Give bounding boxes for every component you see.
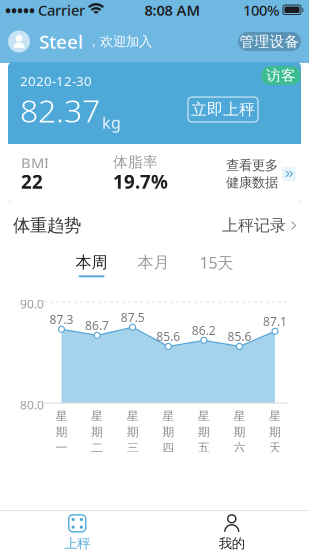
staticText: 六 bbox=[233, 440, 245, 455]
staticText: 本周 bbox=[75, 253, 107, 272]
staticText: 期 bbox=[162, 425, 174, 439]
staticText: 15天 bbox=[199, 252, 233, 273]
staticText: 上秤 bbox=[64, 535, 90, 550]
staticText: 本月 bbox=[137, 253, 169, 272]
staticText: 查看更多 bbox=[226, 157, 278, 173]
staticText: 期 bbox=[91, 425, 103, 439]
staticText: 8:08 AM bbox=[144, 0, 200, 20]
button[interactable]: 本周 bbox=[75, 253, 107, 277]
staticText: 体重趋势 bbox=[13, 215, 81, 236]
staticText: 85.6 bbox=[156, 328, 180, 344]
staticText: ，欢迎加入 bbox=[87, 33, 152, 50]
button[interactable]: 本月 bbox=[137, 253, 169, 277]
staticText: 天 bbox=[269, 440, 281, 455]
staticText: 期 bbox=[55, 425, 67, 439]
staticText: 四 bbox=[162, 440, 174, 455]
staticText: ••••• bbox=[5, 0, 35, 21]
button[interactable]: 我的 bbox=[154, 513, 309, 550]
staticText: 86.7 bbox=[85, 317, 109, 333]
staticText: 22 bbox=[21, 169, 43, 194]
staticText: 19.7% bbox=[113, 169, 168, 194]
staticText: 87.1 bbox=[263, 313, 287, 329]
staticText: 一 bbox=[55, 440, 67, 455]
staticText: 期 bbox=[198, 425, 210, 439]
button[interactable]: 15天 bbox=[199, 252, 233, 278]
staticText: 星 bbox=[162, 409, 174, 424]
staticText: 立即上秤 bbox=[191, 100, 255, 119]
staticText: 90.0 bbox=[20, 296, 44, 312]
staticText: 期 bbox=[233, 425, 245, 439]
staticText: 85.6 bbox=[227, 328, 251, 344]
staticText: 星 bbox=[198, 409, 210, 424]
staticText: 星 bbox=[127, 409, 139, 424]
staticText: 二 bbox=[91, 440, 103, 455]
staticText: 五 bbox=[198, 440, 210, 455]
staticText: BMI bbox=[21, 153, 49, 172]
button[interactable]: 上秤记录 bbox=[222, 216, 296, 235]
staticText: Carrier bbox=[38, 0, 85, 20]
button[interactable]: 管理设备 bbox=[238, 32, 301, 51]
staticText: 100% bbox=[243, 0, 279, 20]
staticText: 星 bbox=[269, 409, 281, 424]
button[interactable]: 访客 bbox=[261, 66, 301, 85]
button[interactable]: 立即上秤 bbox=[188, 97, 258, 122]
staticText: 2020-12-30 bbox=[20, 72, 92, 90]
staticText: 86.2 bbox=[192, 322, 216, 338]
staticText: Steel bbox=[39, 29, 83, 54]
staticText: 管理设备 bbox=[239, 32, 299, 50]
staticText: 80.0 bbox=[20, 397, 44, 413]
staticText: 三 bbox=[127, 440, 139, 455]
staticText: 期 bbox=[269, 425, 281, 439]
staticText: 上秤记录 bbox=[222, 216, 286, 235]
staticText: 82.37 bbox=[20, 89, 100, 131]
staticText: 体脂率 bbox=[113, 153, 158, 171]
staticText: 87.5 bbox=[121, 309, 145, 325]
staticText: kg bbox=[102, 112, 121, 133]
staticText: 期 bbox=[127, 425, 139, 439]
staticText: 星 bbox=[91, 409, 103, 424]
staticText: 星 bbox=[55, 409, 67, 424]
staticText: 星 bbox=[233, 409, 245, 424]
staticText: 访客 bbox=[266, 66, 296, 84]
staticText: 健康数据 bbox=[226, 174, 278, 191]
staticText: 87.3 bbox=[49, 311, 73, 327]
staticText: 我的 bbox=[219, 535, 245, 550]
button[interactable]: 上秤 bbox=[0, 513, 154, 550]
button[interactable]: 查看更多 bbox=[226, 157, 296, 191]
